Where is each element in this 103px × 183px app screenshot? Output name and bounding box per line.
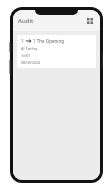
button[interactable]: Audit xyxy=(18,15,34,27)
staticText: Al Fatiha xyxy=(21,46,38,51)
staticText: Audit xyxy=(18,17,34,25)
button[interactable]: 1 xyxy=(17,35,96,68)
staticText: 08/08/2024 xyxy=(21,60,41,65)
staticText: 1v/07 xyxy=(21,53,31,58)
button[interactable]: Filter xyxy=(83,14,96,27)
staticText: 1 xyxy=(21,38,24,44)
staticText: 1 The Opening xyxy=(33,38,65,44)
